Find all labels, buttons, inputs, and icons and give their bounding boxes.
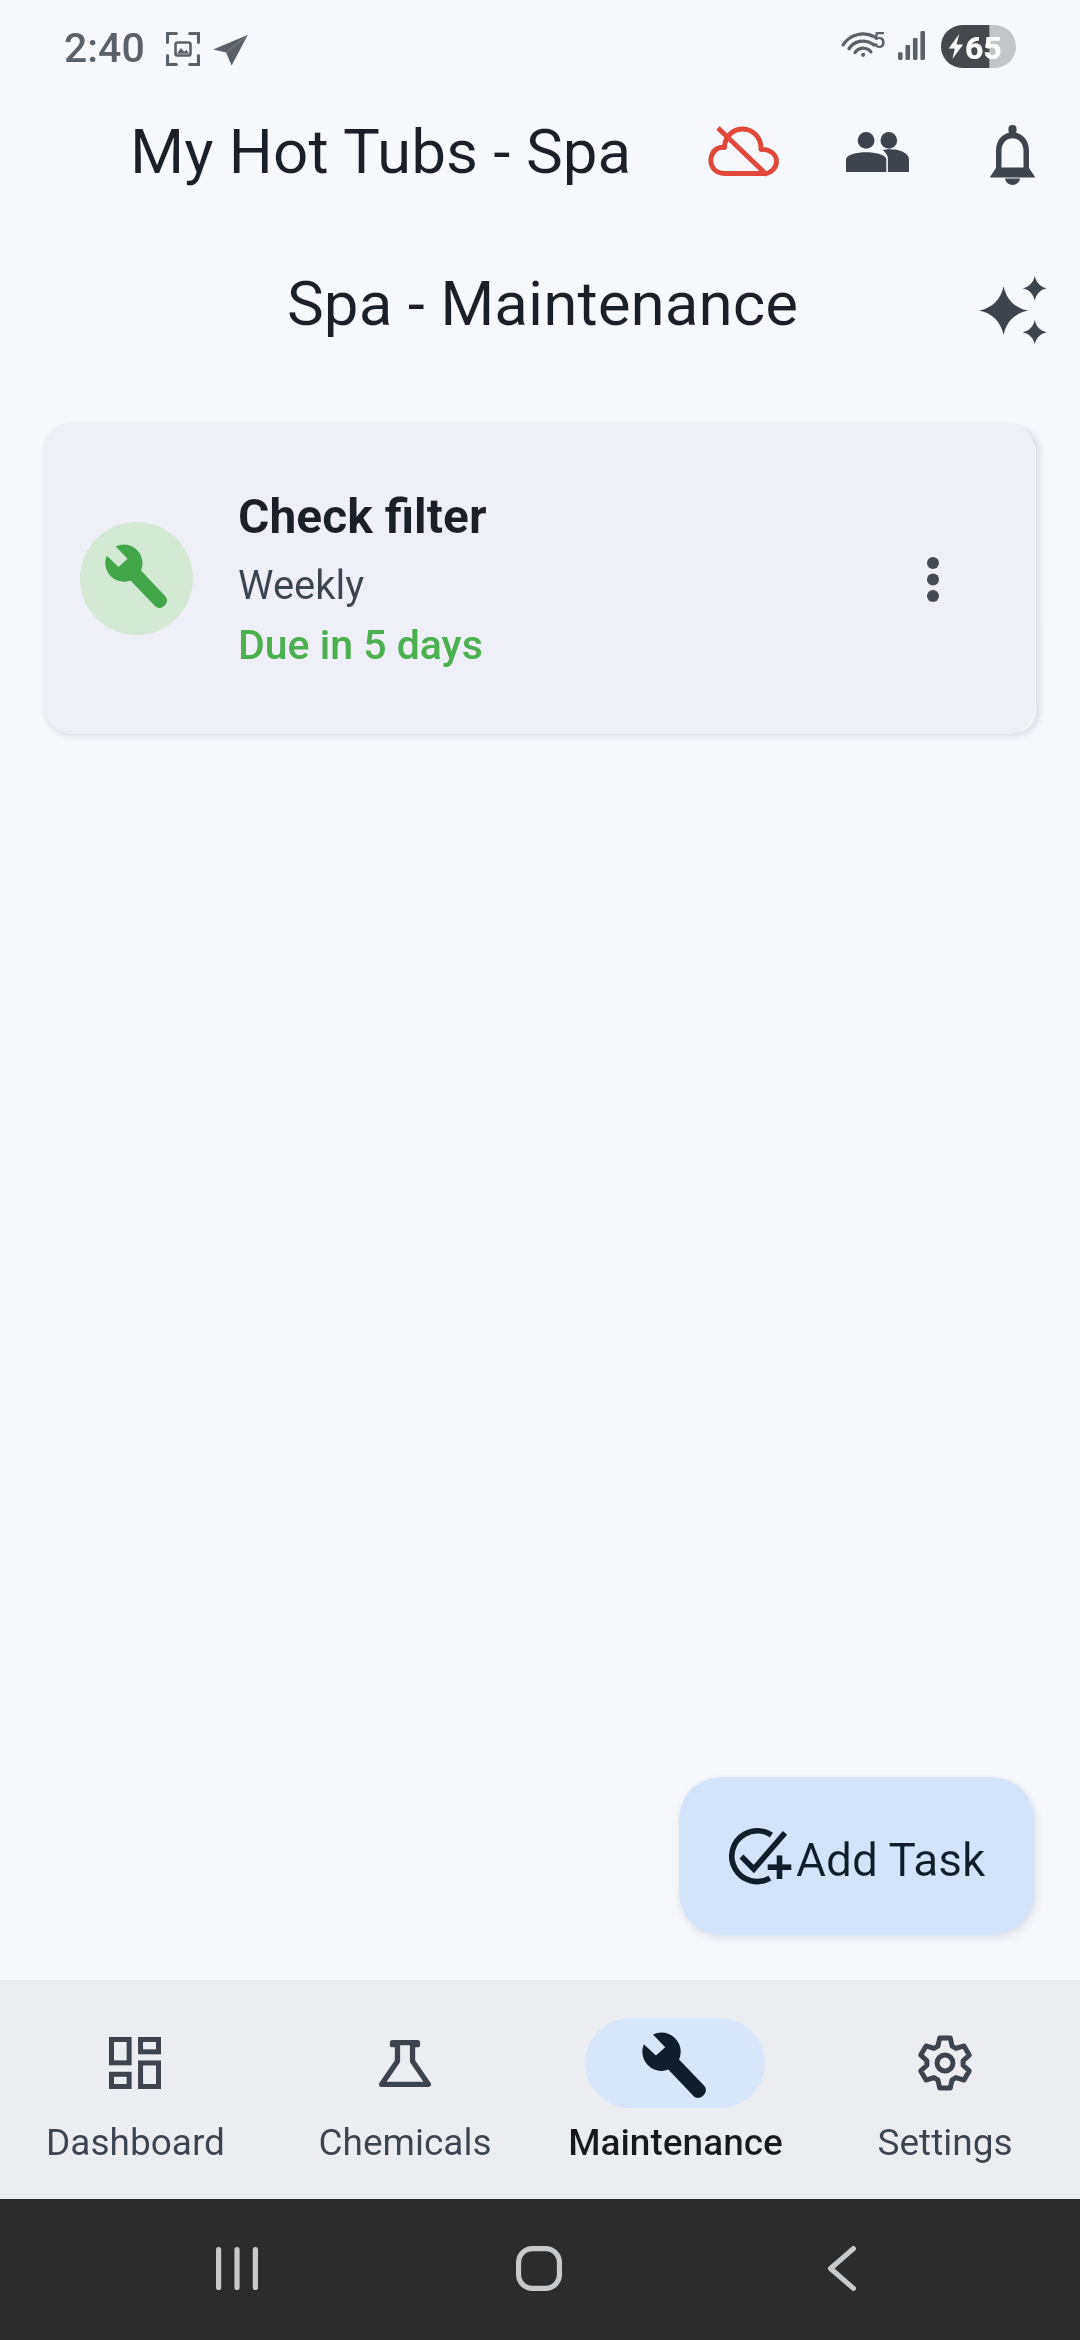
staticText: 65	[965, 29, 1002, 67]
staticText: 2:40	[64, 24, 145, 72]
button[interactable]: Maintenance	[540, 1980, 810, 2199]
button[interactable]: Offline	[695, 105, 791, 201]
button[interactable]: More options	[885, 531, 981, 627]
button[interactable]: Home	[484, 2213, 594, 2323]
staticText: 5	[873, 28, 886, 54]
button[interactable]: Add Task	[679, 1777, 1034, 1935]
button[interactable]: Notifications	[964, 105, 1060, 201]
button[interactable]: Members	[830, 105, 926, 201]
staticText: Spa - Maintenance	[287, 267, 799, 340]
button[interactable]: Check filter	[44, 423, 1035, 734]
staticText: Dashboard	[46, 2121, 225, 2164]
button[interactable]: AI suggestions	[968, 265, 1057, 354]
staticText: Check filter	[238, 488, 487, 544]
button[interactable]: Chemicals	[270, 1980, 540, 2199]
staticText: Due in 5 days	[238, 621, 483, 669]
button[interactable]: Settings	[810, 1980, 1080, 2199]
button[interactable]: Dashboard	[0, 1980, 270, 2199]
staticText: Settings	[877, 2121, 1013, 2164]
button[interactable]: Back	[787, 2213, 897, 2323]
staticText: My Hot Tubs - Spa	[130, 115, 632, 188]
staticText: Weekly	[238, 562, 365, 609]
staticText: Chemicals	[318, 2121, 492, 2164]
staticText: Add Task	[796, 1833, 986, 1887]
staticText: Maintenance	[568, 2121, 783, 2164]
button[interactable]: Recent apps	[182, 2213, 292, 2323]
